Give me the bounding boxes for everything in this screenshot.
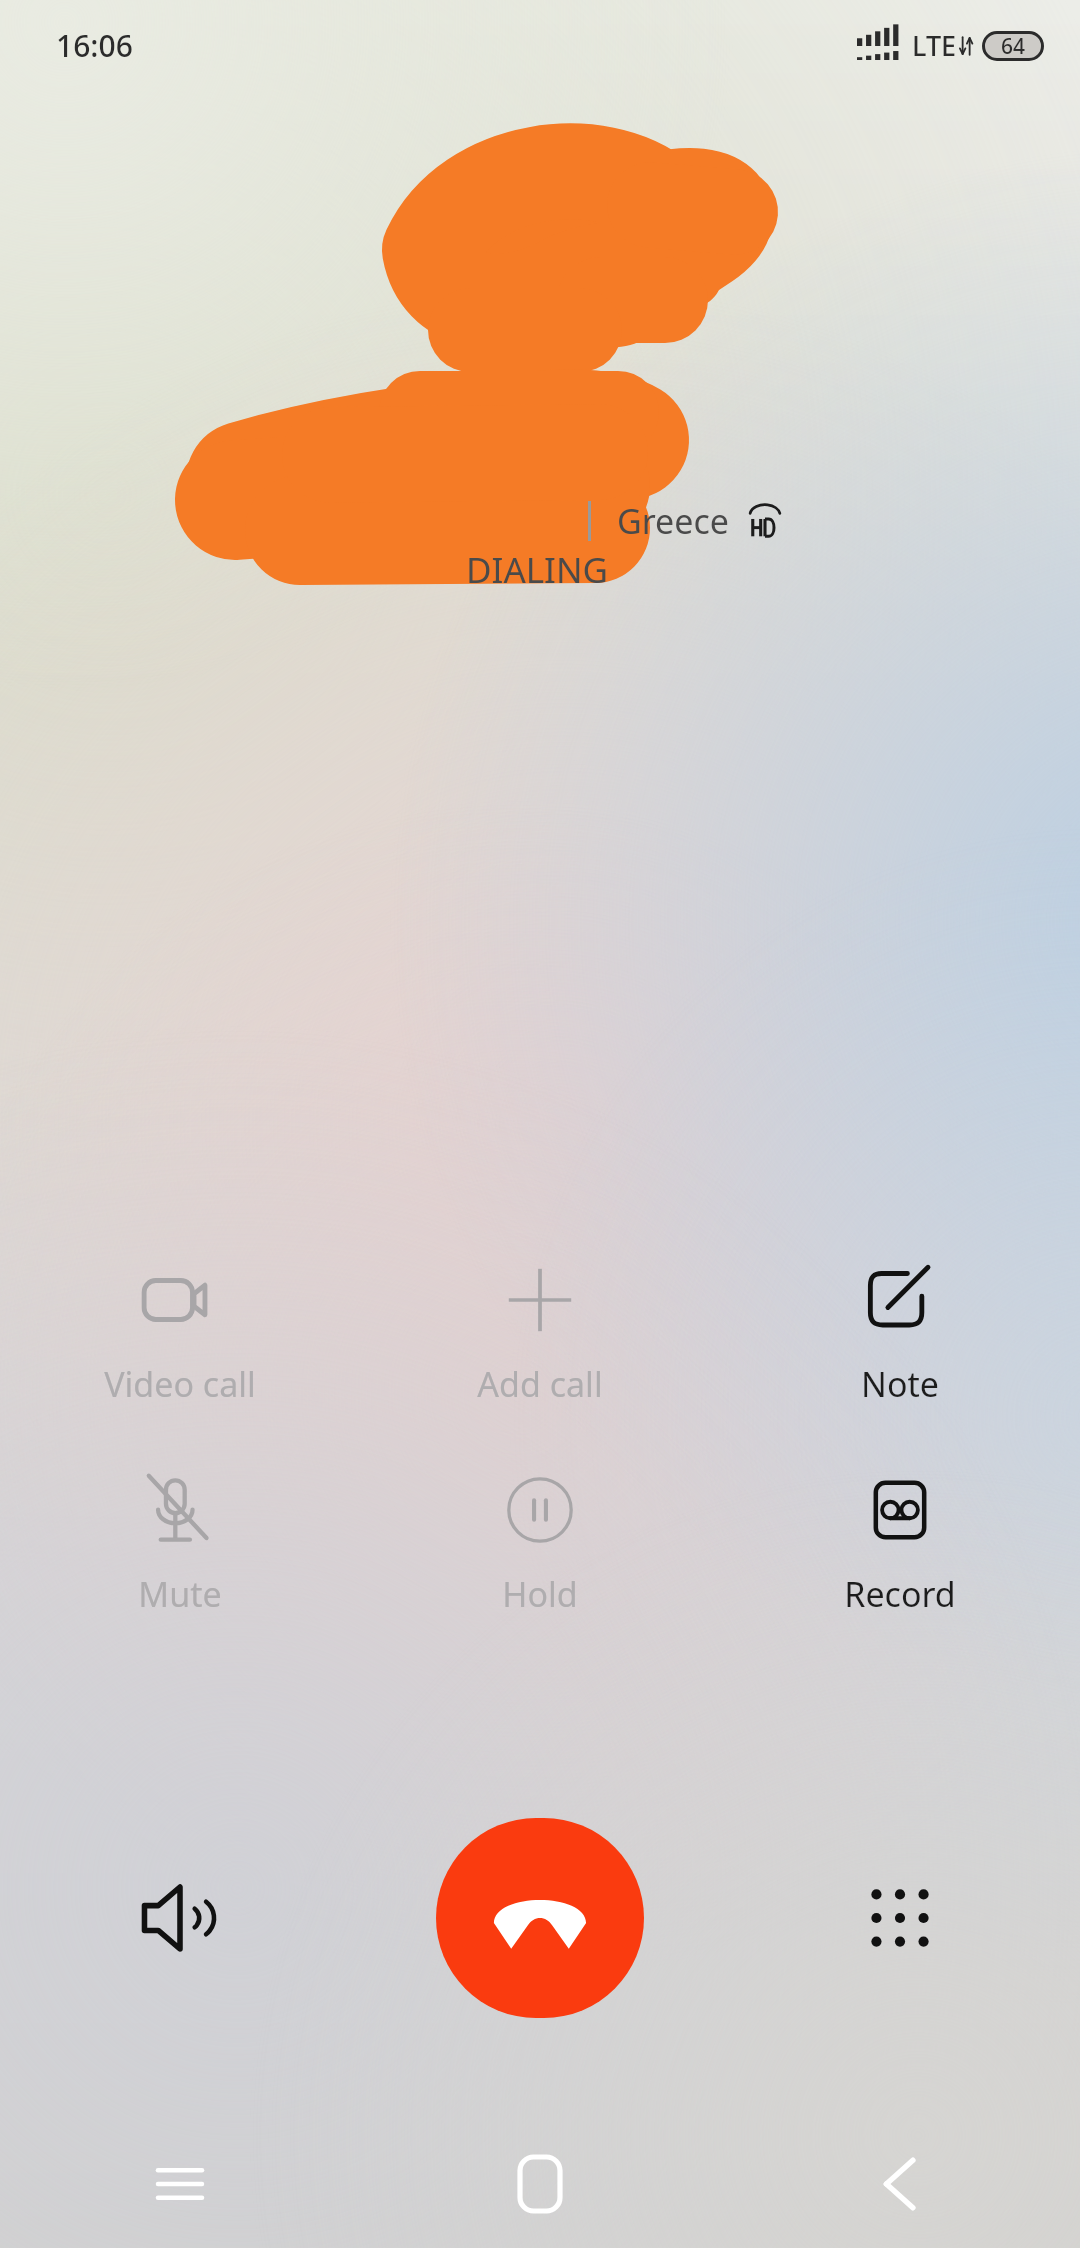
staticText: LTE xyxy=(912,27,957,64)
staticText: 64 xyxy=(1001,32,1026,61)
button[interactable]: Recents xyxy=(0,2120,360,2248)
staticText: Mute xyxy=(138,1571,222,1617)
staticText: 16:06 xyxy=(56,25,133,66)
button[interactable]: Keypad xyxy=(720,1818,1080,2018)
button[interactable]: Speaker xyxy=(0,1818,360,2018)
staticText: Greece xyxy=(617,498,729,544)
button[interactable]: Hold xyxy=(360,1465,720,1623)
button[interactable]: Mute xyxy=(0,1465,360,1623)
staticText: Record xyxy=(844,1571,956,1617)
staticText: Video call xyxy=(104,1361,256,1407)
staticText: Note xyxy=(861,1361,939,1407)
button[interactable]: Video call xyxy=(0,1255,360,1413)
button[interactable]: Home xyxy=(360,2120,720,2248)
button[interactable]: Back xyxy=(720,2120,1080,2248)
button[interactable]: Note xyxy=(720,1255,1080,1413)
staticText: DIALING xyxy=(466,546,609,594)
button[interactable]: Add call xyxy=(360,1255,720,1413)
button[interactable]: End call xyxy=(436,1818,644,2018)
staticText: Hold xyxy=(502,1571,578,1617)
button[interactable]: Record xyxy=(720,1465,1080,1623)
staticText: Add call xyxy=(477,1361,603,1407)
